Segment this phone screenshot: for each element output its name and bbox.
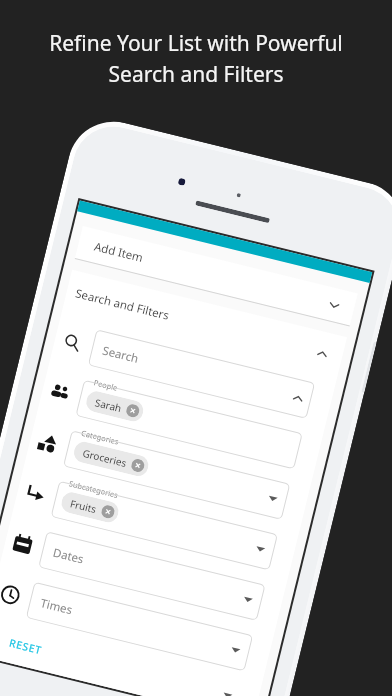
button[interactable]: Search and Filters	[62, 270, 347, 380]
staticText: Groceries	[81, 446, 128, 470]
staticText: Fruits	[69, 496, 98, 516]
staticText: Times	[39, 595, 75, 618]
button[interactable]: Sarah	[45, 365, 305, 476]
button[interactable]: RESET	[8, 636, 44, 657]
staticText: Dates	[51, 544, 85, 567]
staticText: Subcategories	[68, 478, 120, 500]
staticText: Add Item	[92, 238, 145, 266]
button[interactable]: Dates	[7, 516, 267, 628]
button[interactable]: Groceries	[32, 415, 292, 527]
button[interactable]: Fruits	[20, 466, 280, 577]
button[interactable]: Add Item	[75, 226, 358, 326]
staticText: Sarah	[94, 395, 123, 415]
staticText: Categories	[80, 428, 120, 447]
staticText: Refine Your List with Powerful Search an…	[0, 29, 392, 88]
staticText: People	[93, 377, 119, 393]
button[interactable]: Times	[0, 567, 255, 678]
button[interactable]: Search	[57, 314, 317, 426]
staticText: Search and Filters	[74, 285, 171, 324]
staticText: Search	[101, 343, 141, 367]
